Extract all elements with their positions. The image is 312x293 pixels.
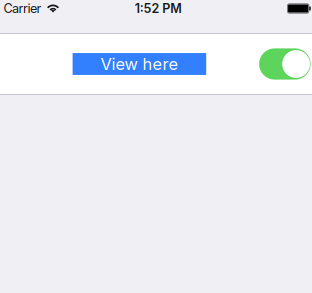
button[interactable]: Notifications on <box>259 48 311 80</box>
staticText: 1:52 PM <box>135 1 182 16</box>
button[interactable]: View here <box>73 53 206 75</box>
staticText: View here <box>100 54 178 74</box>
staticText: Carrier <box>3 1 41 16</box>
